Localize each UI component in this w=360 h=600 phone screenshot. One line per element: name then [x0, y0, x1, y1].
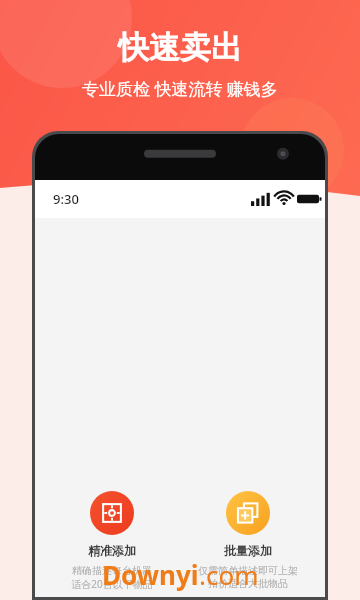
staticText: Downyi	[102, 557, 199, 592]
other: 批量添加	[226, 491, 270, 535]
staticText: .com	[199, 557, 259, 592]
staticText: 仅需简单描述即可上架	[198, 564, 298, 577]
button[interactable]: 精准添加	[52, 491, 172, 591]
button[interactable]: 批量添加	[188, 491, 308, 590]
staticText: 专业质检 快速流转 赚钱多	[82, 77, 278, 100]
staticText: 适合20台以下物品	[71, 577, 153, 591]
other: 精准添加	[90, 491, 134, 535]
staticText: 拍价适合大批物品	[208, 577, 288, 590]
staticText: 精准添加	[88, 543, 136, 558]
staticText: 批量添加	[224, 543, 272, 558]
staticText: 9:30	[53, 190, 79, 208]
staticText: 精确描述每台机器	[72, 564, 152, 577]
staticText: 快速卖出	[118, 28, 242, 67]
